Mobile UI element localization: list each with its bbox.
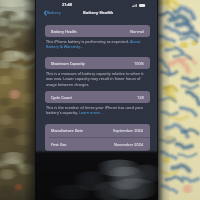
staticText: Battery (47, 10, 61, 15)
staticText: 100% (134, 61, 144, 66)
staticText: Maximum Capacity (51, 61, 85, 66)
staticText: This is the number of times your iPhone … (46, 105, 150, 116)
staticText: 128 (137, 95, 144, 100)
staticText: This iPhone battery is performing as exp… (46, 39, 150, 50)
staticText: Battery Health (51, 29, 77, 34)
staticText: Battery Health (83, 10, 114, 16)
button[interactable]: First Use (45, 138, 150, 151)
staticText: September 2024 (113, 128, 144, 133)
button[interactable]: Maximum Capacity (45, 57, 150, 69)
staticText: This is a measure of battery capacity re… (46, 71, 150, 88)
button[interactable]: Manufacture Date (45, 124, 150, 137)
staticText: Manufacture Date (51, 128, 83, 133)
staticText: November 2024 (114, 142, 144, 147)
other: Back (44, 11, 46, 15)
staticText: 21:48 (62, 2, 72, 7)
button[interactable]: Back (36, 7, 65, 18)
staticText: First Use (51, 142, 67, 147)
button[interactable]: Cycle Count (45, 91, 150, 103)
staticText: Cycle Count (51, 95, 72, 100)
button[interactable]: Battery Health (45, 25, 150, 37)
staticText: Normal (130, 29, 144, 34)
